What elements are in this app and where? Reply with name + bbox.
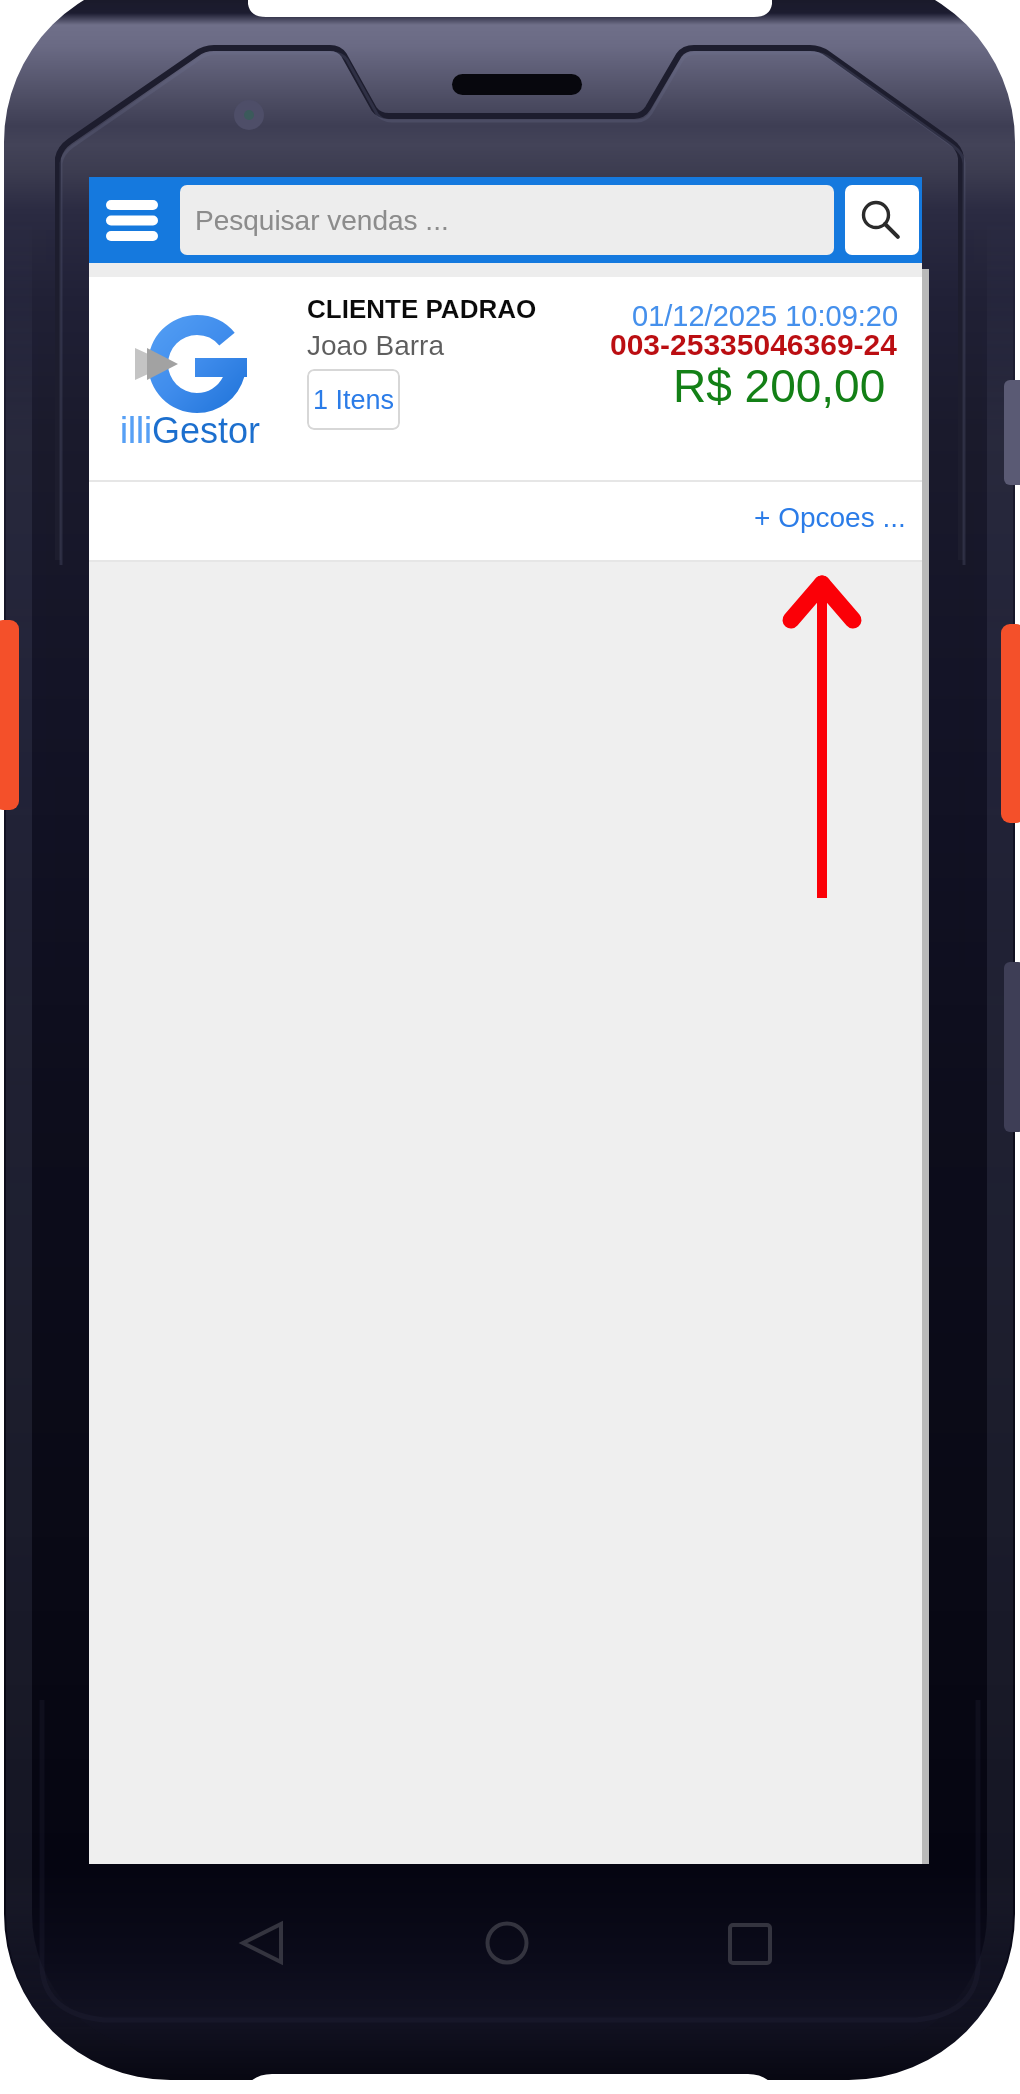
button[interactable]: illi [89, 277, 922, 480]
button[interactable]: Menu [103, 189, 161, 251]
staticText: CLIENTE PADRAO [307, 294, 537, 323]
button[interactable]: + Opcoes ... [89, 482, 922, 560]
button[interactable]: 1 Itens [307, 369, 400, 430]
staticText: 1 Itens [313, 385, 395, 415]
button[interactable]: Pesquisar vendas ... [180, 185, 834, 255]
staticText: + Opcoes ... [754, 502, 906, 533]
staticText: Gestor [152, 410, 261, 450]
button[interactable]: Search [845, 185, 919, 255]
staticText: 01/12/2025 10:09:20 [632, 300, 899, 332]
staticText: illi [120, 410, 152, 450]
staticText: R$ 200,00 [673, 360, 886, 411]
staticText: Pesquisar vendas ... [195, 205, 449, 236]
staticText: 003-25335046369-24 [610, 328, 897, 362]
staticText: Joao Barra [307, 330, 444, 361]
